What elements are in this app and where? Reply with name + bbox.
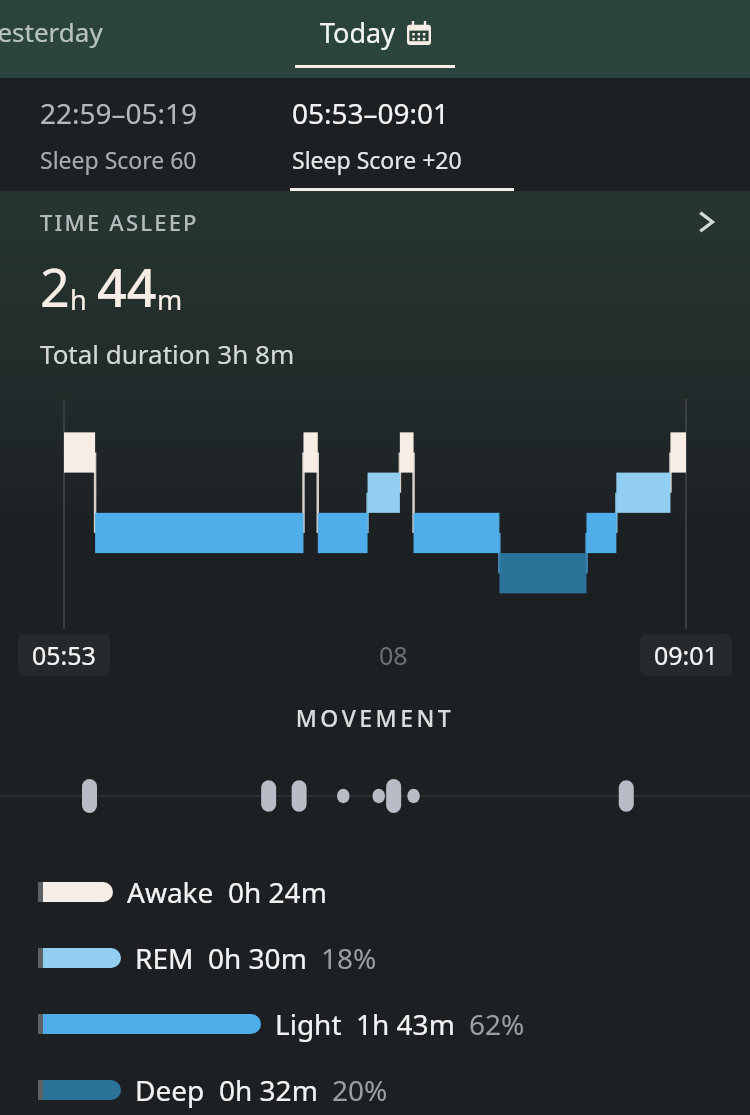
staticText: Sleep Score +20 [292,144,462,175]
staticText: Sleep Score 60 [40,144,197,175]
staticText: 05:53–09:01 [292,94,450,132]
staticText: 62% [469,1005,525,1043]
staticText: 44 [97,251,157,322]
button[interactable]: Today [295,14,455,68]
staticText: Total duration 3h 8m [40,336,295,371]
button[interactable]: Awake [0,869,750,915]
staticText: 22:59–05:19 [40,94,198,132]
staticText: m [157,281,183,318]
staticText: Deep [135,1071,205,1109]
staticText: TIME ASLEEP [40,207,199,237]
staticText: MOVEMENT [0,702,750,733]
button[interactable]: TIME ASLEEP [0,191,750,676]
staticText: Awake [127,873,214,911]
button[interactable]: Deep [0,1067,750,1113]
button[interactable]: 22:59–05:19 [40,94,198,175]
button[interactable]: 05:53–09:01 [292,94,462,175]
button[interactable]: Yesterday [0,10,111,53]
other: Open time asleep details [696,211,718,233]
other: Calendar [407,21,431,45]
staticText: 08 [379,638,408,672]
button[interactable]: REM [0,935,750,981]
staticText: 0h 24m [228,873,327,911]
staticText: 18% [321,939,377,977]
staticText: 09:01 [654,638,718,672]
staticText: 2 [40,251,70,322]
staticText: Yesterday [0,14,103,49]
staticText: h [70,281,87,318]
staticText: 0h 30m [208,939,307,977]
staticText: Light [275,1005,342,1043]
staticText: 0h 32m [219,1071,318,1109]
staticText: Today [320,14,395,51]
staticText: 1h 43m [356,1005,455,1043]
button[interactable]: Light [0,1001,750,1047]
staticText: REM [135,939,194,977]
staticText: 20% [332,1071,388,1109]
staticText: 05:53 [32,638,96,672]
